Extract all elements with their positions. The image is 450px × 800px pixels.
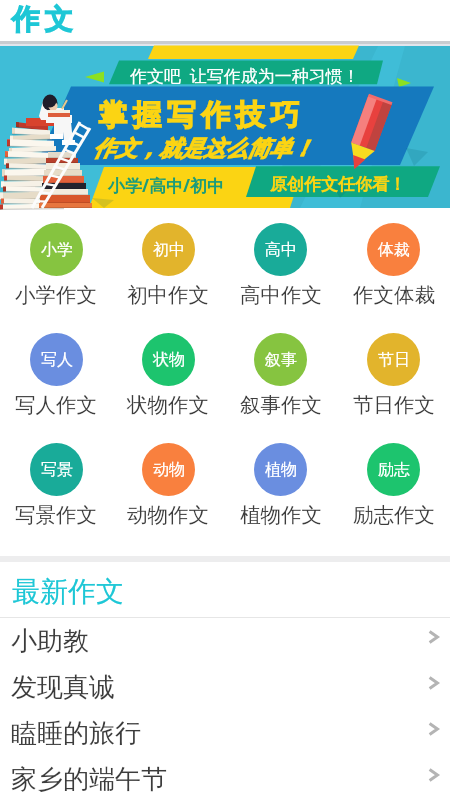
staticText: 小学	[41, 240, 73, 260]
button[interactable]: 瞌睡的旅行	[0, 710, 450, 756]
other: Open	[428, 768, 439, 782]
staticText: 体裁	[378, 240, 410, 260]
staticText: 小助教	[11, 625, 89, 658]
staticText: 写人	[41, 350, 73, 370]
button[interactable]: 叙事	[224, 333, 337, 418]
staticText: 作文吧 让写作成为一种习惯！	[130, 64, 360, 87]
button[interactable]: 节日	[337, 333, 450, 418]
staticText: 励志作文	[353, 502, 435, 528]
staticText: 高中作文	[240, 282, 322, 308]
button[interactable]: 体裁	[337, 223, 450, 308]
staticText: 初中	[153, 240, 185, 260]
staticText: 写景	[41, 460, 73, 480]
staticText: 写景作文	[15, 502, 97, 528]
staticText: 作文，就是这么简单！	[93, 135, 313, 163]
staticText: 初中作文	[127, 282, 209, 308]
staticText: 家乡的端午节	[11, 763, 167, 796]
staticText: 小学/高中/初中	[108, 174, 225, 197]
button[interactable]: 初中	[112, 223, 224, 308]
staticText: 作文体裁	[353, 282, 435, 308]
button[interactable]: 作文	[0, 0, 450, 41]
staticText: 瞌睡的旅行	[11, 717, 141, 750]
button[interactable]: 小助教	[0, 618, 450, 664]
button[interactable]: 励志	[337, 443, 450, 528]
staticText: 原创作文任你看！	[270, 174, 406, 195]
staticText: 叙事	[265, 350, 297, 370]
button[interactable]: 写景	[0, 443, 112, 528]
button[interactable]: 状物	[112, 333, 224, 418]
staticText: 最新作文	[12, 574, 124, 609]
staticText: 发现真诚	[11, 671, 115, 704]
button[interactable]: 家乡的端午节	[0, 756, 450, 800]
staticText: 叙事作文	[240, 392, 322, 418]
staticText: 作文	[9, 2, 75, 37]
staticText: 励志	[378, 460, 410, 480]
other: Open	[428, 676, 439, 690]
staticText: 掌握写作技巧	[98, 97, 305, 134]
staticText: 动物	[153, 460, 185, 480]
button[interactable]: 植物	[224, 443, 337, 528]
staticText: 节日作文	[353, 392, 435, 418]
staticText: 高中	[265, 240, 297, 260]
staticText: 状物	[153, 350, 185, 370]
staticText: 状物作文	[127, 392, 209, 418]
button[interactable]: 发现真诚	[0, 664, 450, 710]
button[interactable]: 动物	[112, 443, 224, 528]
button[interactable]: 高中	[224, 223, 337, 308]
other: Open	[428, 630, 439, 644]
button[interactable]: 小学	[0, 223, 112, 308]
staticText: 写人作文	[15, 392, 97, 418]
staticText: 植物作文	[240, 502, 322, 528]
staticText: 节日	[378, 350, 410, 370]
button[interactable]: 写人	[0, 333, 112, 418]
staticText: 动物作文	[127, 502, 209, 528]
staticText: 植物	[265, 460, 297, 480]
staticText: 小学作文	[15, 282, 97, 308]
other: Open	[428, 722, 439, 736]
